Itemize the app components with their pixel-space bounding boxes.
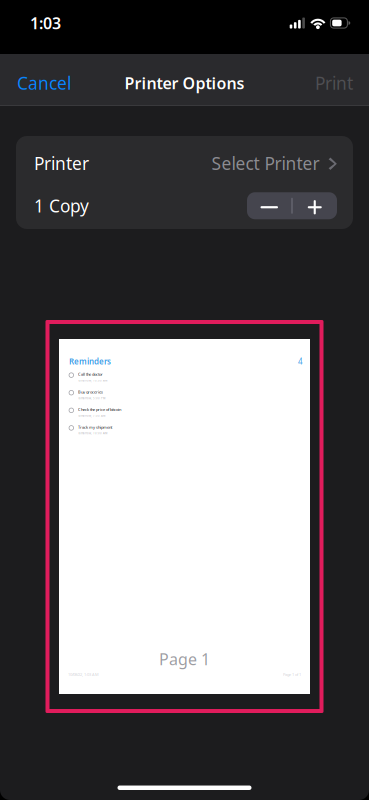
button[interactable]: Printer	[16, 136, 353, 182]
button[interactable]: Cancel	[0, 57, 88, 103]
staticText: Printer Options	[124, 72, 244, 94]
staticText: 10/08/22, 1:03 AM	[68, 672, 99, 677]
staticText: Tomorrow, 7:00 AM	[78, 414, 105, 417]
staticText: 1:03	[30, 12, 61, 34]
staticText: 1 Copy	[34, 194, 89, 217]
staticText: Print	[315, 71, 353, 94]
button[interactable]: Print	[299, 57, 369, 103]
button[interactable]: Increase copies	[292, 192, 337, 219]
staticText: Buy groceries	[78, 389, 103, 394]
staticText: Tomorrow, 5:00 PM	[78, 396, 105, 400]
staticText: Page 1 of 1	[283, 672, 301, 677]
staticText: Track my shipment	[78, 424, 112, 430]
staticText: Check the price of bitcoin	[78, 407, 121, 412]
staticText: Reminders	[69, 356, 111, 367]
staticText: 4	[298, 356, 303, 367]
staticText: Tomorrow, 10:00 AM	[78, 431, 107, 435]
staticText: Tomorrow, 10:00 AM	[78, 379, 107, 382]
staticText: Cancel	[17, 71, 71, 94]
button[interactable]: Page 1 preview	[45, 320, 323, 713]
button[interactable]: Decrease copies	[247, 192, 291, 219]
staticText: Printer	[34, 152, 89, 175]
staticText: Page 1	[159, 648, 210, 670]
staticText: Select Printer	[212, 152, 320, 175]
staticText: Call the doctor	[78, 372, 103, 377]
